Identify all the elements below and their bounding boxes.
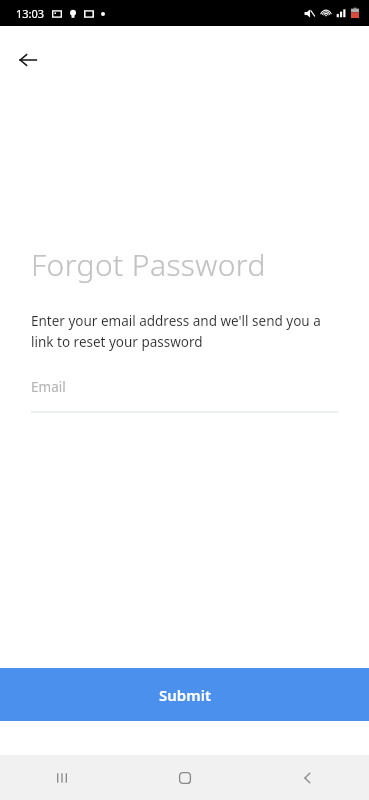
staticText: 13:03	[16, 6, 45, 21]
button[interactable]: Recents	[0, 755, 123, 800]
button[interactable]: Back	[246, 755, 369, 800]
button[interactable]: Email	[31, 378, 338, 413]
button[interactable]: Submit	[0, 668, 369, 721]
staticText: Email	[31, 378, 66, 396]
button[interactable]: Back	[8, 40, 48, 80]
staticText: Enter your email address and we'll send …	[31, 312, 338, 351]
staticText: Submit	[159, 685, 211, 705]
button[interactable]: Home	[123, 755, 246, 800]
staticText: Forgot Password	[31, 244, 266, 285]
